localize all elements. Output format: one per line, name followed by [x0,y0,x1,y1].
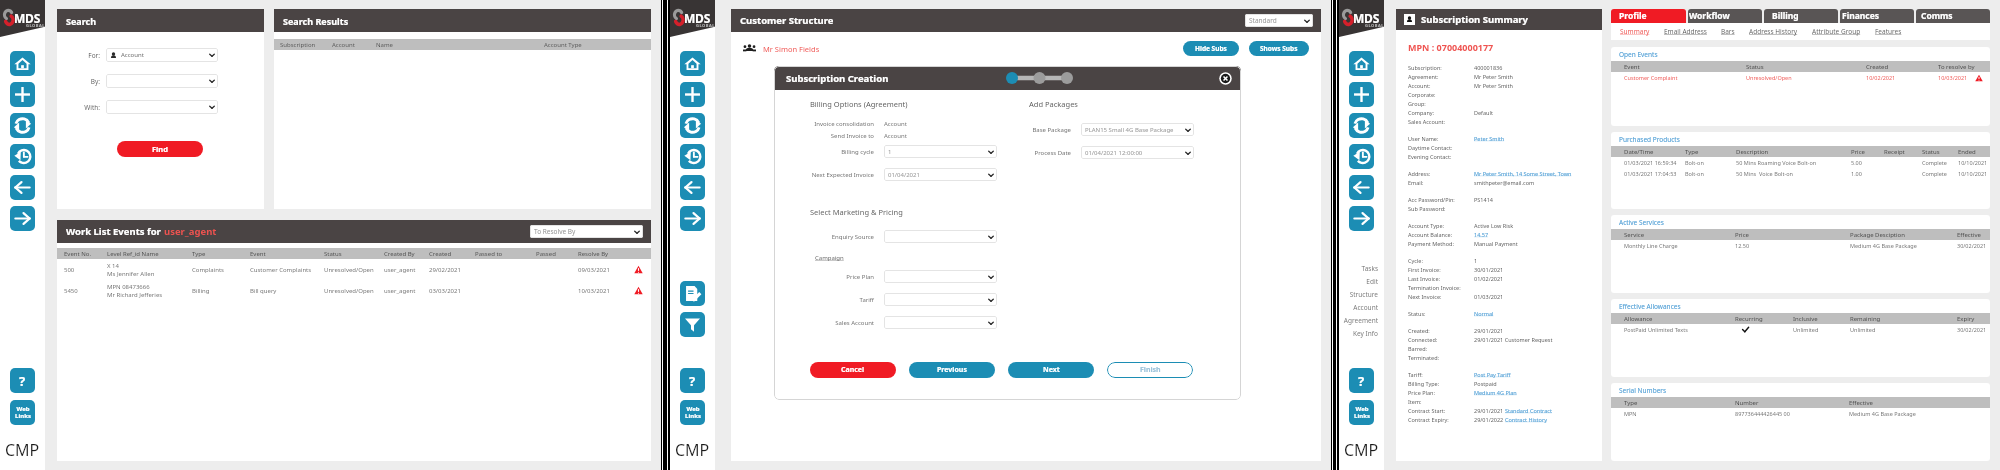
button[interactable]: 01/04/2021 [884,168,997,181]
button[interactable]: Add [1349,82,1374,107]
button[interactable]: Filter [680,312,705,337]
button[interactable]: PostPaid Unlimited Texts [1611,324,1990,335]
button[interactable]: Forward [680,206,705,231]
staticText: 29/01/2021 [1474,327,1504,334]
staticText: 01/03/2021 16:59:34 [1624,159,1685,166]
button[interactable]: Select option [884,270,997,283]
button[interactable]: Hide Subs [1183,41,1239,56]
button[interactable]: Key Info [1339,327,1384,340]
button[interactable]: Select option [884,293,997,306]
button[interactable]: Select option [106,74,218,88]
staticText: Unresolved/Open [1746,74,1866,81]
button[interactable]: Account [1339,301,1384,314]
button[interactable]: Find [117,141,203,157]
button[interactable]: 01/03/2021 16:59:34 [1611,157,1990,168]
button[interactable]: Notes [680,281,705,306]
button[interactable]: MPN [1611,408,1990,419]
button[interactable]: Edit [1339,275,1384,288]
button[interactable]: Monthly Line Charge [1611,240,1990,251]
staticText: Allowance [1624,315,1735,323]
button[interactable]: Home [10,51,35,76]
button[interactable]: Forward [1349,206,1374,231]
button[interactable]: Profile [1611,9,1686,23]
staticText: PS1414 [1474,196,1493,203]
button[interactable]: Address History [1749,27,1798,36]
button[interactable]: Help [680,368,705,393]
button[interactable]: Agreement [1339,314,1384,327]
staticText: Ms Jennifer Allen [107,270,155,278]
button[interactable]: Workflow [1688,9,1762,23]
button[interactable]: Close [1219,72,1232,85]
button[interactable]: Account [106,48,218,62]
staticText: Service [1624,231,1735,239]
button[interactable]: Add [680,82,705,107]
staticText: To resolve by [1938,63,1988,71]
button[interactable]: Back [680,175,705,200]
button[interactable]: Standard [1245,14,1313,27]
button[interactable]: 01/03/2021 17:04:53 [1611,168,1990,179]
staticText: Hide Subs [1195,44,1227,53]
button[interactable]: Web Links [680,400,705,425]
staticText: Enquiry Source [774,233,874,241]
button[interactable]: History [1349,144,1374,169]
staticText: Workflow [1689,10,1730,22]
button[interactable]: History [680,144,705,169]
button[interactable]: Email Address [1664,27,1707,36]
button[interactable]: Home [1349,51,1374,76]
button[interactable]: Next [1008,362,1094,378]
staticText: Tariff [774,296,874,304]
button[interactable]: Previous [909,362,995,378]
button[interactable]: Billing [1764,9,1838,23]
button[interactable]: Summary [1620,27,1650,36]
button[interactable]: Select option [884,316,997,329]
button[interactable]: Attribute Group [1812,27,1861,36]
staticText: 01/04/2021 12:00:00 [1085,149,1143,157]
button[interactable]: Finish [1107,362,1193,378]
button[interactable]: Tasks [1339,262,1384,275]
button[interactable]: Structure [1339,288,1384,301]
staticText: PostPaid Unlimited Texts [1624,326,1735,333]
button[interactable]: Customer Complaint [1611,72,1990,83]
button[interactable]: 500 [57,259,651,280]
button[interactable]: Bars [1721,27,1735,36]
button[interactable]: To Resolve By [530,225,643,238]
button[interactable]: Finances [1840,9,1914,23]
button[interactable]: Help [1349,368,1374,393]
button[interactable]: Web Links [1349,400,1374,425]
button[interactable]: Shows Subs [1249,41,1309,56]
staticText: Account [884,132,907,140]
button[interactable]: Comms [1916,9,1990,23]
staticText: Type [1624,399,1735,407]
staticText: Description [1736,148,1851,156]
button[interactable]: Refresh [1349,113,1374,138]
button[interactable]: Web Links [10,400,35,425]
staticText: 14.57 [1474,231,1489,238]
staticText: Peter Smith [1474,135,1505,142]
button[interactable]: 01/04/2021 12:00:00 [1081,146,1194,159]
button[interactable]: PLAN15 Small 4G Base Package [1081,123,1194,136]
button[interactable]: Forward [10,206,35,231]
button[interactable]: Help [10,368,35,393]
button[interactable]: History [10,144,35,169]
staticText: 897736444426445 00 [1735,410,1849,417]
staticText: Monthly Line Charge [1624,242,1735,249]
button[interactable]: 5450 [57,280,651,301]
button[interactable]: Features [1875,27,1902,36]
staticText: X 14 [107,262,119,270]
button[interactable]: 1 [884,145,997,158]
button[interactable]: Select option [106,100,218,114]
button[interactable]: Refresh [10,113,35,138]
button[interactable]: Home [680,51,705,76]
staticText: Contract History [1505,416,1548,423]
staticText: user_agent [384,266,429,274]
staticText: Complete [1922,170,1958,177]
button[interactable]: Back [10,175,35,200]
staticText: Price Plan: [1408,389,1474,396]
staticText: Sales Account [774,319,874,327]
button[interactable]: Refresh [680,113,705,138]
staticText: Standard Contract [1505,407,1552,414]
button[interactable]: Add [10,82,35,107]
button[interactable]: Select option [884,230,997,243]
button[interactable]: Cancel [810,362,896,378]
button[interactable]: Back [1349,175,1374,200]
